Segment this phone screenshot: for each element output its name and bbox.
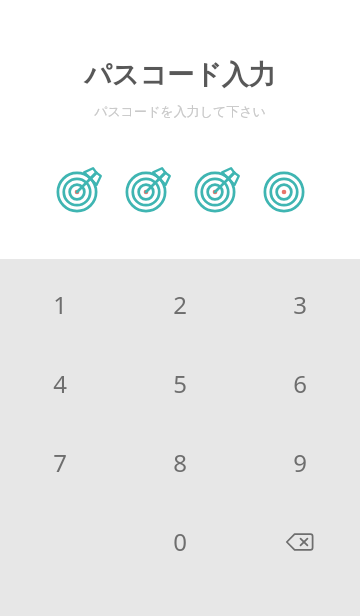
button[interactable]: 9 xyxy=(240,423,360,502)
button[interactable]: 8 xyxy=(120,423,240,502)
button[interactable]: 4 xyxy=(0,344,120,423)
button[interactable]: 6 xyxy=(240,344,360,423)
staticText: 1 xyxy=(53,288,67,321)
button[interactable]: 3 xyxy=(240,265,360,344)
staticText: 3 xyxy=(293,288,307,321)
staticText: 2 xyxy=(173,288,187,321)
staticText: 0 xyxy=(173,525,187,558)
button[interactable]: 5 xyxy=(120,344,240,423)
button[interactable]: 1 xyxy=(0,265,120,344)
button[interactable]: 7 xyxy=(0,423,120,502)
staticText: パスコードを入力して下さい xyxy=(0,103,360,119)
staticText: 8 xyxy=(173,446,187,479)
button[interactable]: Delete xyxy=(240,502,360,581)
staticText: 9 xyxy=(293,446,307,479)
button[interactable]: 0 xyxy=(120,502,240,581)
staticText: 5 xyxy=(173,367,187,400)
staticText: 4 xyxy=(53,367,67,400)
staticText: パスコード入力 xyxy=(0,58,360,92)
button[interactable]: 2 xyxy=(120,265,240,344)
staticText: 7 xyxy=(53,446,67,479)
staticText: 6 xyxy=(293,367,307,400)
